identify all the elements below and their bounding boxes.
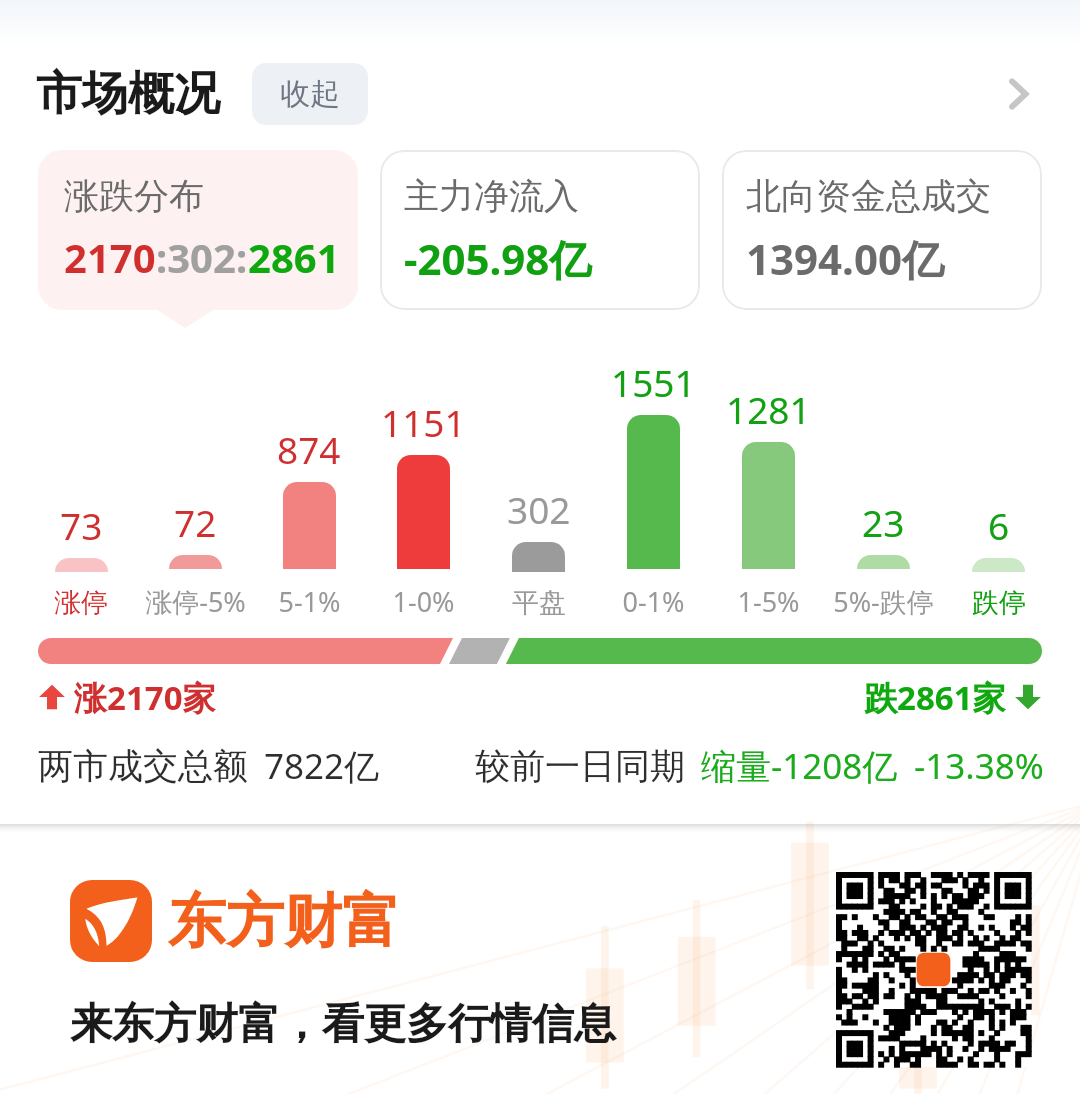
- staticText: 0-1%: [622, 583, 685, 620]
- staticText: 5-1%: [278, 583, 341, 620]
- staticText: 两市成交总额: [38, 744, 248, 788]
- staticText: 1151: [381, 397, 466, 447]
- staticText: -205.98亿: [404, 230, 592, 287]
- staticText: 7822亿: [264, 742, 380, 790]
- staticText: 涨停-5%: [145, 583, 246, 620]
- button[interactable]: [38, 638, 1042, 664]
- staticText: 6: [988, 500, 1010, 550]
- staticText: 市场概况: [36, 65, 220, 123]
- staticText: 1551: [611, 357, 696, 407]
- button[interactable]: 涨跌分布: [38, 150, 358, 310]
- staticText: 涨停: [54, 586, 108, 620]
- staticText: 2861: [248, 230, 340, 284]
- staticText: 1-0%: [392, 583, 455, 620]
- button[interactable]: 收起: [252, 63, 368, 125]
- staticText: 5%-跌停: [833, 583, 934, 620]
- staticText: 主力净流入: [404, 174, 579, 218]
- staticText: 涨2170家: [74, 675, 216, 720]
- button[interactable]: QR code: [836, 872, 1031, 1067]
- staticText: 北向资金总成交: [746, 174, 991, 218]
- staticText: 涨跌分布: [64, 174, 204, 218]
- staticText: 较前一日同期: [475, 744, 685, 788]
- staticText: 平盘: [512, 586, 566, 620]
- staticText: 72: [174, 497, 217, 547]
- staticText: 来东方财富，看更多行情信息: [70, 998, 616, 1051]
- staticText: 23: [862, 497, 905, 547]
- staticText: 1394.00亿: [746, 230, 944, 287]
- staticText: :302:: [156, 230, 248, 284]
- staticText: 302: [507, 484, 571, 534]
- button[interactable]: Open market overview: [982, 58, 1054, 130]
- staticText: 缩量-1208亿: [701, 742, 898, 790]
- button[interactable]: 北向资金总成交: [722, 150, 1042, 310]
- staticText: -13.38%: [914, 742, 1044, 790]
- staticText: 跌2861家: [864, 675, 1006, 720]
- button[interactable]: 主力净流入: [380, 150, 700, 310]
- staticText: 东方财富: [168, 885, 400, 958]
- staticText: 2170: [64, 230, 156, 284]
- staticText: 73: [60, 500, 103, 550]
- staticText: 收起: [280, 75, 340, 113]
- staticText: 跌停: [972, 586, 1026, 620]
- staticText: 874: [277, 424, 341, 474]
- staticText: 1281: [726, 384, 811, 434]
- staticText: 1-5%: [737, 583, 800, 620]
